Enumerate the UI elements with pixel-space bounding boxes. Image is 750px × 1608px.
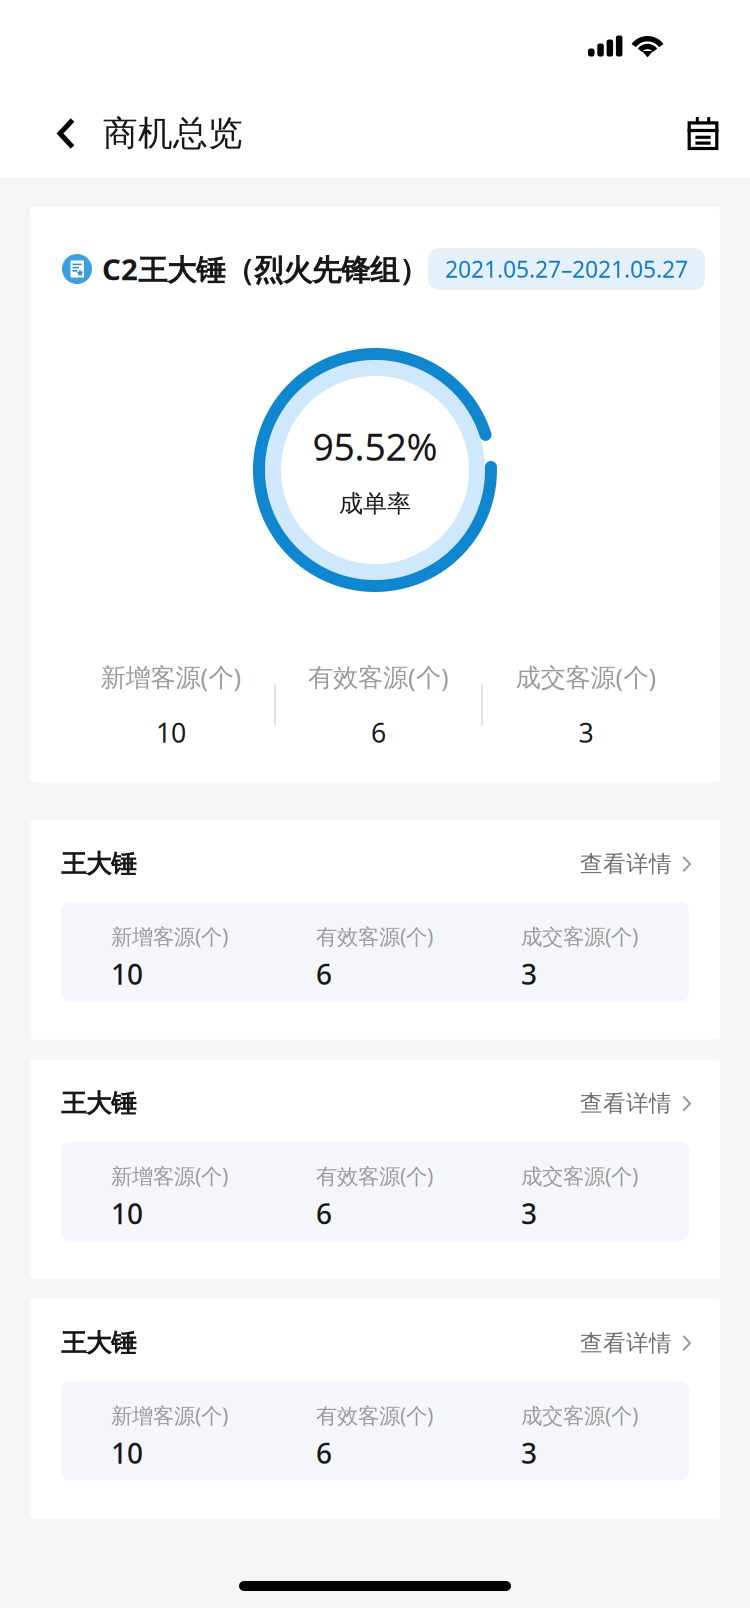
staticText: 成交客源(个) — [521, 922, 638, 950]
staticText: 10 — [111, 955, 143, 993]
staticText: 2021.05.27–2021.05.27 — [445, 254, 688, 284]
staticText: 6 — [316, 955, 332, 993]
staticText: 有效客源(个) — [308, 660, 449, 694]
staticText: 10 — [156, 715, 186, 750]
staticText: 3 — [521, 1434, 537, 1472]
staticText: 新增客源(个) — [100, 660, 241, 694]
staticText: 6 — [316, 1434, 332, 1472]
staticText: 成单率 — [339, 489, 411, 518]
staticText: 有效客源(个) — [316, 1401, 433, 1429]
staticText: 王大锤 — [61, 1327, 136, 1359]
staticText: 查看详情 — [580, 1329, 672, 1357]
staticText: 95.52% — [312, 421, 437, 471]
staticText: 6 — [371, 715, 386, 750]
staticText: 新增客源(个) — [111, 922, 228, 950]
staticText: 6 — [316, 1195, 332, 1232]
staticText: 成交客源(个) — [515, 660, 656, 694]
button[interactable]: 王大锤 — [30, 1060, 720, 1142]
staticText: 新增客源(个) — [111, 1162, 228, 1190]
staticText: 有效客源(个) — [316, 1162, 433, 1190]
staticText: 商机总览 — [103, 112, 243, 155]
staticText: 王大锤 — [61, 1088, 136, 1119]
button[interactable]: 王大锤 — [30, 820, 720, 902]
staticText: 成交客源(个) — [521, 1162, 638, 1190]
staticText: 查看详情 — [580, 1090, 672, 1117]
staticText: 3 — [521, 955, 537, 993]
staticText: C2王大锤（烈火先锋组） — [102, 249, 428, 288]
staticText: 成交客源(个) — [521, 1401, 638, 1429]
staticText: 新增客源(个) — [111, 1401, 228, 1429]
button[interactable]: Calendar — [686, 73, 750, 194]
button[interactable]: 王大锤 — [30, 1299, 720, 1381]
staticText: 3 — [578, 715, 593, 750]
staticText: 10 — [111, 1195, 143, 1232]
staticText: 王大锤 — [61, 848, 136, 880]
staticText: 10 — [111, 1434, 143, 1472]
staticText: 查看详情 — [580, 850, 672, 878]
staticText: 有效客源(个) — [316, 922, 433, 950]
button[interactable]: Back — [0, 73, 103, 194]
staticText: 3 — [521, 1195, 537, 1232]
